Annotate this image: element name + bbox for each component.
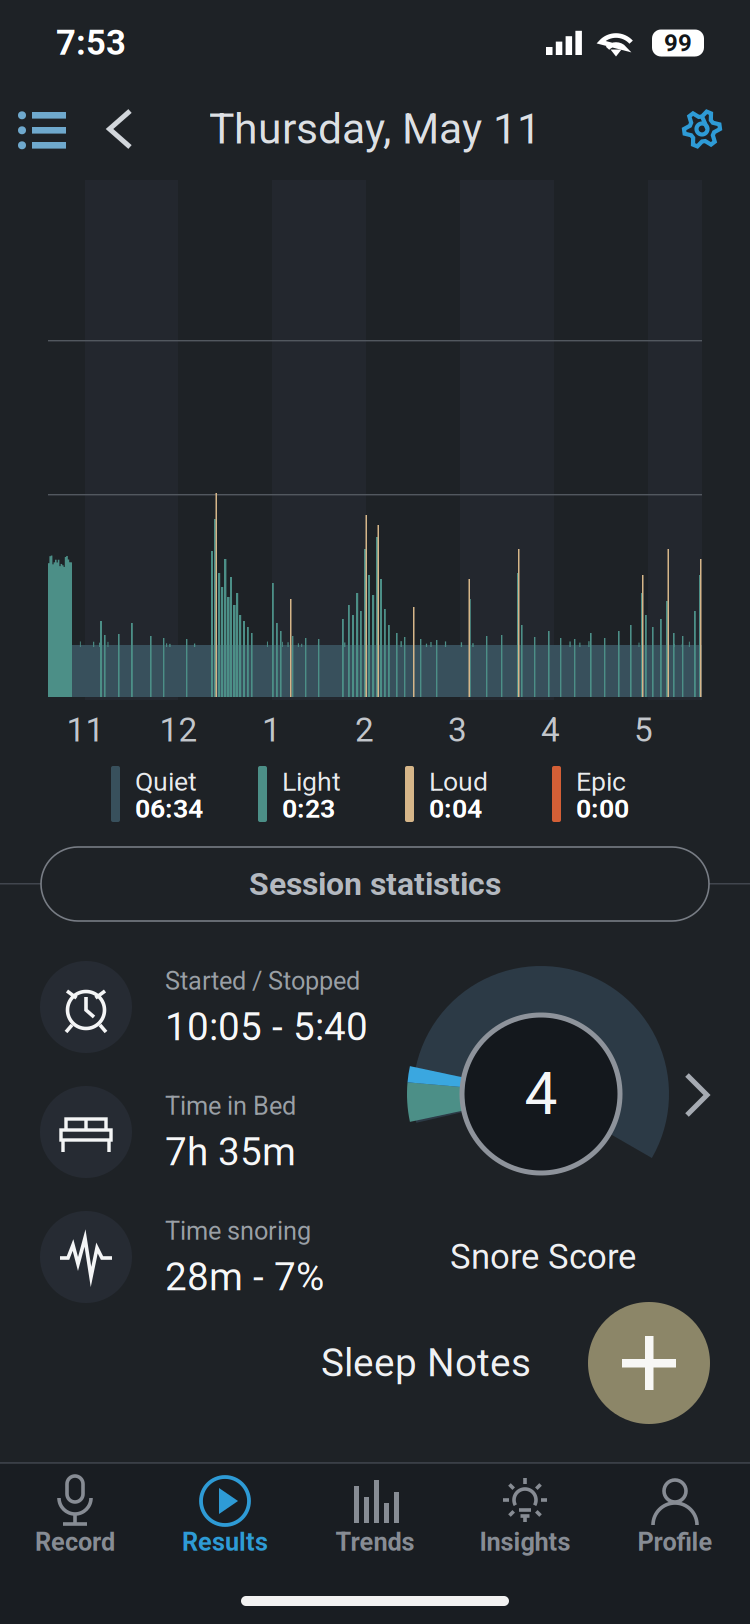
staticText: Results [182,1527,268,1557]
staticText: 4 [524,1060,557,1128]
staticText: 2 [355,710,374,750]
staticText: 0:00 [576,793,629,824]
button[interactable]: Trends [300,1474,450,1574]
button[interactable]: Snore score detail [666,1054,728,1136]
button[interactable]: Snore Score [393,1230,693,1284]
staticText: Profile [637,1527,712,1557]
staticText: Trends [335,1527,414,1557]
staticText: Sleep Notes [321,1340,531,1386]
button[interactable]: Settings [654,87,750,171]
staticText: 4 [541,710,560,750]
button[interactable]: 4 [416,969,666,1219]
staticText: Epic [576,766,626,797]
staticText: Loud [429,766,488,797]
staticText: Time in Bed [165,1091,296,1121]
staticText: Light [282,766,341,797]
staticText: Insights [479,1527,570,1557]
button[interactable]: Add sleep note [588,1302,710,1424]
button[interactable]: Back [84,88,155,170]
staticText: 0:23 [282,793,335,824]
staticText: 11 [66,710,104,750]
staticText: Quiet [135,766,197,797]
staticText: 1 [262,710,281,750]
button[interactable]: Profile [600,1474,750,1574]
staticText: 7h 35m [165,1129,296,1175]
staticText: Record [35,1527,115,1557]
staticText: Thursday, May 11 [209,104,541,154]
staticText: 28m - 7% [165,1254,324,1300]
staticText: Time snoring [165,1216,311,1246]
staticText: 10:05 - 5:40 [165,1004,368,1050]
button[interactable]: Sessions [0,87,84,171]
staticText: 0:04 [429,793,482,824]
staticText: 12 [159,710,197,750]
staticText: 5 [634,710,653,750]
staticText: Snore Score [450,1237,636,1277]
button[interactable]: Record [0,1474,150,1574]
staticText: Session statistics [249,865,501,903]
staticText: 99 [664,29,692,57]
staticText: 7:53 [56,23,126,63]
button[interactable]: Results [150,1474,300,1574]
button[interactable]: Session statistics [41,847,709,921]
staticText: 06:34 [135,793,203,824]
button[interactable]: Insights [450,1474,600,1574]
staticText: Started / Stopped [165,966,360,996]
staticText: 3 [448,710,467,750]
